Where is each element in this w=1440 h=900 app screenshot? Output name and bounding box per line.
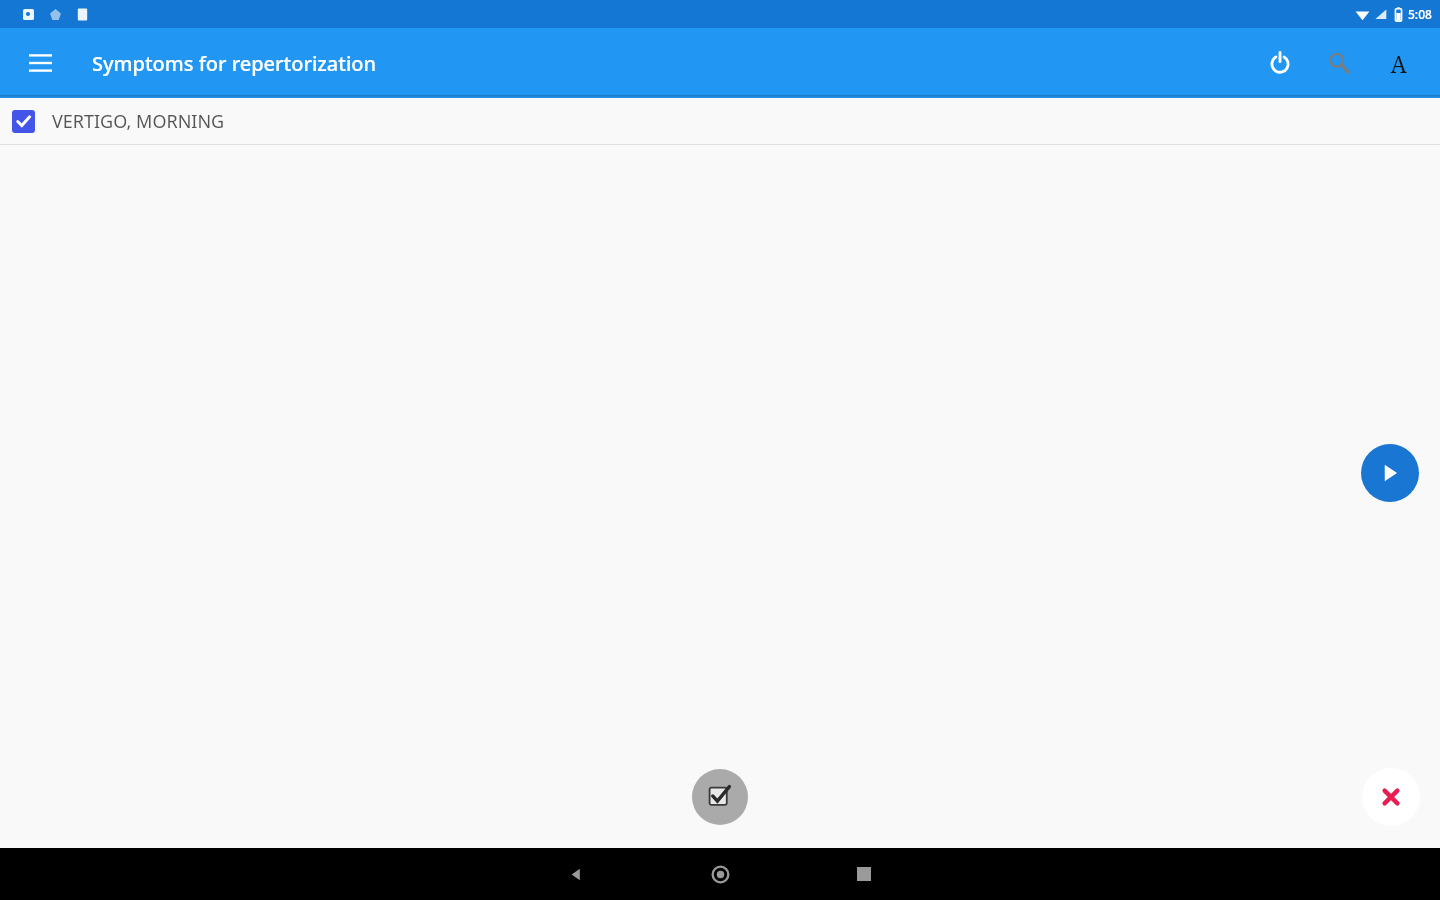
staticText: Symptoms for repertorization bbox=[92, 50, 377, 77]
staticText: A bbox=[1390, 48, 1407, 79]
button[interactable]: Open navigation menu bbox=[18, 41, 62, 85]
button[interactable]: Power bbox=[1256, 39, 1304, 87]
staticText: VERTIGO, MORNING bbox=[52, 109, 225, 134]
button[interactable]: Font size bbox=[1374, 39, 1422, 87]
button[interactable]: Select all bbox=[692, 769, 748, 825]
button[interactable]: Cancel bbox=[1362, 768, 1420, 826]
button[interactable]: Search bbox=[1315, 39, 1363, 87]
button[interactable]: Home bbox=[696, 850, 744, 898]
button[interactable]: Recent apps bbox=[840, 850, 888, 898]
button[interactable]: Start repertorization bbox=[1361, 444, 1419, 502]
button[interactable]: Back bbox=[552, 850, 600, 898]
staticText: 5:08 bbox=[1408, 6, 1432, 22]
button[interactable]: VERTIGO, MORNING bbox=[0, 98, 1440, 144]
